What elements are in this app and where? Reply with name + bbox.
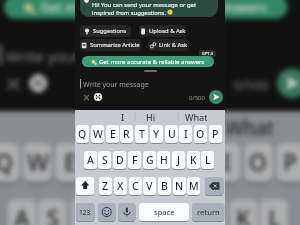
button[interactable]: I (113, 110, 133, 123)
button[interactable]: I (179, 125, 192, 144)
staticText: J (177, 153, 181, 167)
button[interactable] (76, 177, 94, 196)
button[interactable]: What (185, 110, 207, 123)
button[interactable]: G (143, 151, 156, 170)
button[interactable]: U (182, 143, 210, 184)
button[interactable]: E (106, 125, 119, 144)
button[interactable]: S (38, 199, 66, 225)
button[interactable]: Q (0, 143, 19, 184)
button[interactable]: T (135, 125, 148, 144)
button[interactable]: V (143, 177, 156, 196)
staticText: D (77, 204, 94, 225)
button[interactable] (277, 68, 300, 98)
button[interactable]: T (118, 143, 146, 184)
button[interactable]: J (197, 199, 225, 225)
button[interactable] (118, 203, 136, 222)
button[interactable]: G (135, 199, 163, 225)
button[interactable]: Z (99, 177, 112, 196)
button[interactable]: Get more accurate & reliable answers (4, 0, 288, 19)
staticText: P (283, 148, 298, 178)
button[interactable]: M (187, 177, 200, 196)
button[interactable] (209, 90, 223, 104)
button[interactable]: R (85, 143, 113, 184)
button[interactable]: J (172, 151, 185, 170)
button[interactable]: O (194, 125, 207, 144)
button[interactable]: Get more accurate & reliable answers (82, 56, 214, 67)
staticText: D (116, 153, 124, 167)
staticText: U (189, 148, 206, 178)
button[interactable]: P (277, 143, 300, 184)
button[interactable]: Y (150, 143, 178, 184)
button[interactable]: Link & Ask (148, 39, 189, 51)
button[interactable]: D (70, 199, 98, 225)
staticText: I (88, 113, 96, 139)
staticText: B (161, 179, 168, 193)
button[interactable] (93, 92, 103, 102)
button[interactable]: A (84, 151, 97, 170)
button[interactable]: K (187, 151, 200, 170)
button[interactable]: H (157, 151, 170, 170)
staticText: space (154, 207, 175, 217)
button[interactable]: H (165, 199, 193, 225)
button[interactable]: L (201, 151, 214, 170)
staticText: O (249, 148, 268, 178)
button[interactable]: I (70, 111, 113, 139)
button[interactable]: A (8, 199, 36, 225)
staticText: Hi (146, 111, 156, 123)
staticText: T (126, 148, 139, 178)
staticText: U (168, 127, 176, 141)
button[interactable]: E (55, 143, 83, 184)
button[interactable]: U (165, 125, 178, 144)
staticText: S (47, 204, 60, 225)
staticText: J (208, 204, 217, 225)
staticText: Get more accurate & reliable answers (40, 0, 268, 16)
button[interactable] (98, 203, 116, 222)
button[interactable]: W (91, 125, 104, 144)
button[interactable]: F (103, 199, 131, 225)
button[interactable]: R (120, 125, 133, 144)
button[interactable]: Hi (131, 111, 174, 139)
staticText: I (121, 111, 125, 123)
button[interactable]: Upload & Ask (139, 25, 186, 37)
button[interactable]: Q (76, 125, 89, 144)
button[interactable] (82, 93, 91, 102)
button[interactable] (27, 72, 49, 94)
button[interactable]: I (212, 143, 240, 184)
button[interactable] (4, 75, 23, 94)
staticText: M (189, 179, 199, 193)
button[interactable]: F (128, 151, 141, 170)
staticText: 123 (79, 208, 91, 217)
staticText: X (117, 179, 124, 193)
staticText: Write your message (83, 80, 149, 90)
staticText: 0/500 (234, 77, 268, 94)
staticText: inspired from suggestions. (92, 9, 166, 17)
staticText: L (205, 153, 211, 167)
button[interactable]: N (173, 177, 186, 196)
button[interactable]: 123 (76, 203, 94, 222)
staticText: Upload & Ask (149, 27, 186, 35)
button[interactable]: Suggestions (80, 25, 131, 37)
button[interactable]: P (209, 125, 222, 144)
button[interactable]: L (260, 199, 288, 225)
button[interactable]: return (192, 203, 224, 222)
button[interactable]: D (113, 151, 126, 170)
button[interactable]: O (245, 143, 273, 184)
staticText: F (132, 153, 138, 167)
button[interactable]: Y (150, 125, 163, 144)
button[interactable]: B (158, 177, 171, 196)
button[interactable] (205, 177, 223, 196)
staticText: E (64, 148, 77, 178)
button[interactable]: S (98, 151, 111, 170)
staticText: 0/500 (189, 94, 205, 102)
button[interactable]: K (230, 199, 257, 225)
button[interactable]: X (114, 177, 127, 196)
button[interactable]: Hi (141, 110, 161, 123)
staticText: K (190, 153, 197, 167)
button[interactable]: Summarize Article (80, 39, 141, 51)
staticText: Summarize Article (90, 41, 140, 49)
staticText: Q (78, 127, 87, 141)
button[interactable]: C (129, 177, 142, 196)
button[interactable]: W (23, 143, 51, 184)
button[interactable]: What (225, 111, 273, 139)
button[interactable]: space (139, 203, 189, 222)
